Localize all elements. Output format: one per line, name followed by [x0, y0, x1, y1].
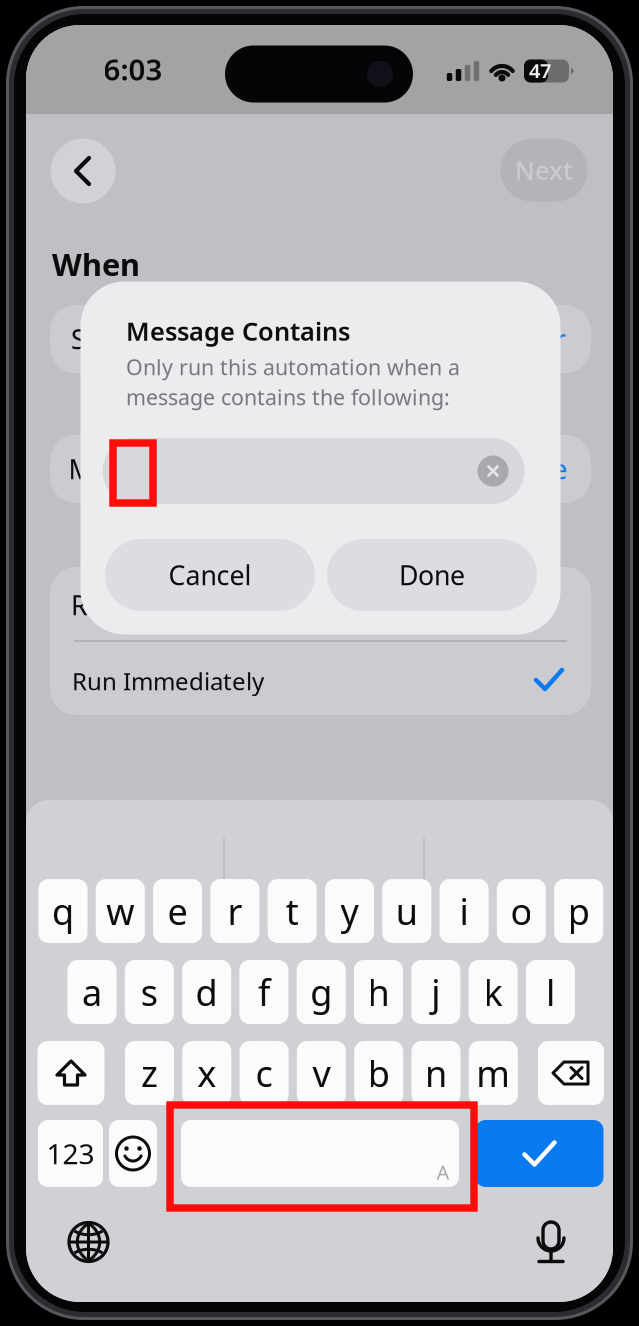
button[interactable]: Cancel [105, 539, 315, 611]
staticText: x [197, 1049, 216, 1097]
staticText: Only run this automation when a [126, 353, 460, 381]
staticText: Next [515, 153, 573, 187]
staticText: 123 [46, 1135, 94, 1172]
button[interactable]: Space [181, 1120, 459, 1187]
button[interactable]: i [440, 879, 489, 943]
staticText: k [484, 968, 503, 1016]
staticText: v [312, 1049, 330, 1097]
button[interactable]: v [297, 1041, 346, 1105]
button[interactable]: Emoji [109, 1120, 157, 1187]
button[interactable]: f [239, 960, 288, 1024]
button[interactable]: z [125, 1041, 174, 1105]
staticText: t [286, 887, 299, 935]
button[interactable]: k [469, 960, 518, 1024]
staticText: 47 [529, 57, 551, 84]
button[interactable]: Delete [538, 1041, 604, 1105]
staticText: p [568, 887, 590, 935]
staticText: Sender [71, 321, 159, 357]
staticText: c [256, 1049, 273, 1097]
staticText: A [436, 1159, 449, 1185]
button[interactable]: Done [327, 539, 537, 611]
staticText: message contains the following: [126, 383, 450, 411]
staticText: Any Sender [424, 321, 566, 357]
staticText: d [196, 968, 218, 1016]
staticText: j [431, 968, 440, 1016]
staticText: r [227, 887, 242, 935]
button[interactable]: Next keyboard [69, 1222, 108, 1261]
staticText: 6:03 [103, 49, 162, 88]
staticText: Cancel [168, 557, 251, 593]
button[interactable]: w [96, 879, 145, 943]
button[interactable]: e [153, 879, 202, 943]
staticText: u [396, 887, 418, 935]
staticText: w [106, 887, 134, 935]
staticText: Any Message [402, 451, 567, 487]
staticText: o [510, 887, 532, 935]
staticText: l [546, 968, 555, 1016]
staticText: When [52, 244, 140, 284]
staticText: s [141, 968, 158, 1016]
button[interactable]: q [38, 879, 87, 943]
button[interactable]: Return [475, 1120, 603, 1187]
button[interactable]: Shift [37, 1041, 104, 1105]
button[interactable]: b [354, 1041, 403, 1105]
staticText: a [82, 968, 102, 1016]
staticText: Message [68, 451, 179, 487]
button[interactable]: s [125, 960, 174, 1024]
button[interactable]: Back [50, 138, 115, 203]
staticText: f [258, 968, 270, 1016]
staticText: Message Contains [126, 314, 350, 348]
staticText: z [141, 1049, 158, 1097]
staticText: n [425, 1049, 447, 1097]
button[interactable]: g [297, 960, 346, 1024]
staticText: b [368, 1049, 390, 1097]
button[interactable]: a [67, 960, 116, 1024]
button[interactable]: c [240, 1041, 289, 1105]
staticText: m [476, 1049, 510, 1097]
button[interactable]: x [182, 1041, 231, 1105]
button[interactable]: 123 [38, 1120, 103, 1187]
staticText: e [168, 887, 188, 935]
button[interactable]: j [411, 960, 460, 1024]
button[interactable]: Dictate [530, 1221, 572, 1263]
button[interactable]: l [526, 960, 575, 1024]
staticText: g [310, 968, 332, 1016]
staticText: i [460, 887, 469, 935]
button[interactable]: Next [500, 138, 587, 201]
staticText: Done [399, 557, 465, 593]
staticText: Run Immediately [72, 665, 264, 697]
staticText: y [340, 887, 358, 935]
button[interactable]: d [182, 960, 231, 1024]
button[interactable]: y [325, 879, 374, 943]
button[interactable]: p [554, 879, 603, 943]
staticText: Repeat [71, 587, 159, 623]
button[interactable]: h [354, 960, 403, 1024]
button[interactable]: m [469, 1041, 518, 1105]
button[interactable]: u [382, 879, 431, 943]
button[interactable]: t [268, 879, 317, 943]
staticText: h [367, 968, 389, 1016]
button[interactable]: n [411, 1041, 460, 1105]
button[interactable]: o [497, 879, 546, 943]
staticText: q [52, 887, 74, 935]
button[interactable]: r [210, 879, 259, 943]
